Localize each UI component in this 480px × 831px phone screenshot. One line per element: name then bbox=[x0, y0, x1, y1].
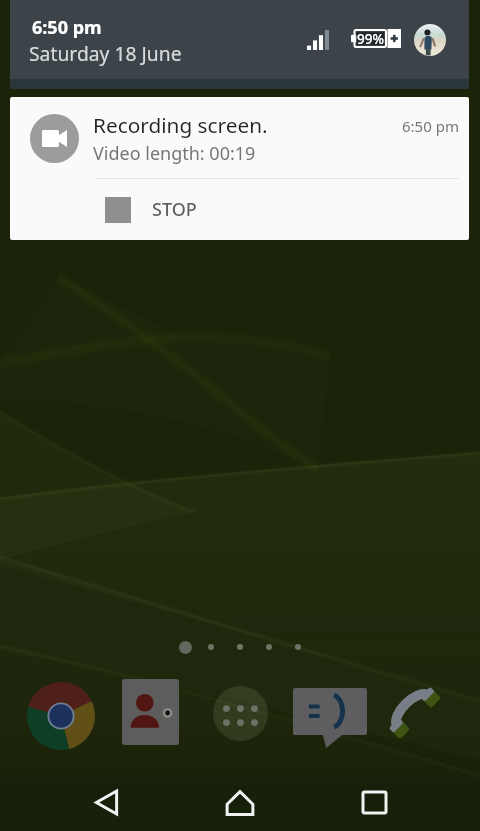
staticText: 6:50 pm bbox=[402, 116, 459, 136]
button[interactable]: Contacts bbox=[122, 679, 179, 745]
staticText: 99% bbox=[357, 30, 384, 48]
staticText: STOP bbox=[152, 197, 197, 222]
staticText: 6:50 pm bbox=[32, 15, 102, 40]
button[interactable]: Back bbox=[78, 780, 134, 825]
button[interactable]: Phone bbox=[370, 668, 448, 746]
button[interactable]: Chrome bbox=[27, 682, 95, 750]
button[interactable]: STOP bbox=[10, 179, 469, 240]
button[interactable]: Messaging bbox=[293, 688, 367, 748]
button[interactable]: All apps bbox=[213, 686, 268, 741]
staticText: Recording screen. bbox=[93, 111, 268, 139]
button[interactable]: Profile bbox=[414, 24, 446, 56]
staticText: Saturday 18 June bbox=[29, 40, 182, 66]
button[interactable]: Recent apps bbox=[346, 780, 402, 825]
staticText: Video length: 00:19 bbox=[93, 141, 256, 166]
button[interactable]: Home bbox=[212, 780, 268, 825]
